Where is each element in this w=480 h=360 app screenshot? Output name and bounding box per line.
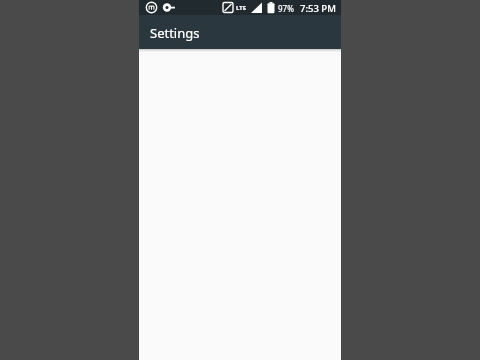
- staticText: 7:53 PM: [300, 2, 336, 15]
- staticText: Settings: [150, 24, 200, 42]
- button[interactable]: Settings: [139, 15, 341, 49]
- staticText: 97%: [278, 3, 294, 14]
- staticText: LTE: [236, 4, 247, 12]
